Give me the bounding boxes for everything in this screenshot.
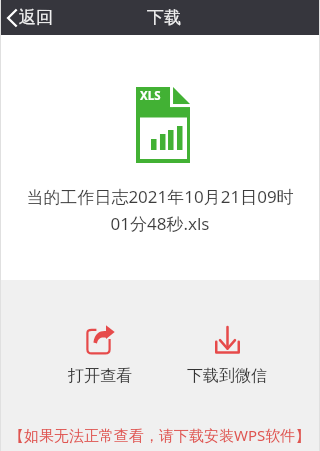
button[interactable]: 下载到微信 (177, 323, 277, 388)
staticText: 下载到微信 (187, 366, 267, 386)
button[interactable]: 返回 (0, 3, 63, 32)
staticText: 当的工作日志2021年10月21日09时01分48秒.xls (18, 185, 302, 235)
staticText: 【如果无法正常查看，请下载安装WPS软件】 (9, 425, 311, 445)
staticText: XLS (140, 88, 161, 104)
staticText: 打开查看 (68, 366, 132, 386)
button[interactable]: 打开查看 (58, 323, 142, 388)
staticText: 返回 (19, 7, 53, 28)
staticText: 下载 (147, 7, 181, 28)
